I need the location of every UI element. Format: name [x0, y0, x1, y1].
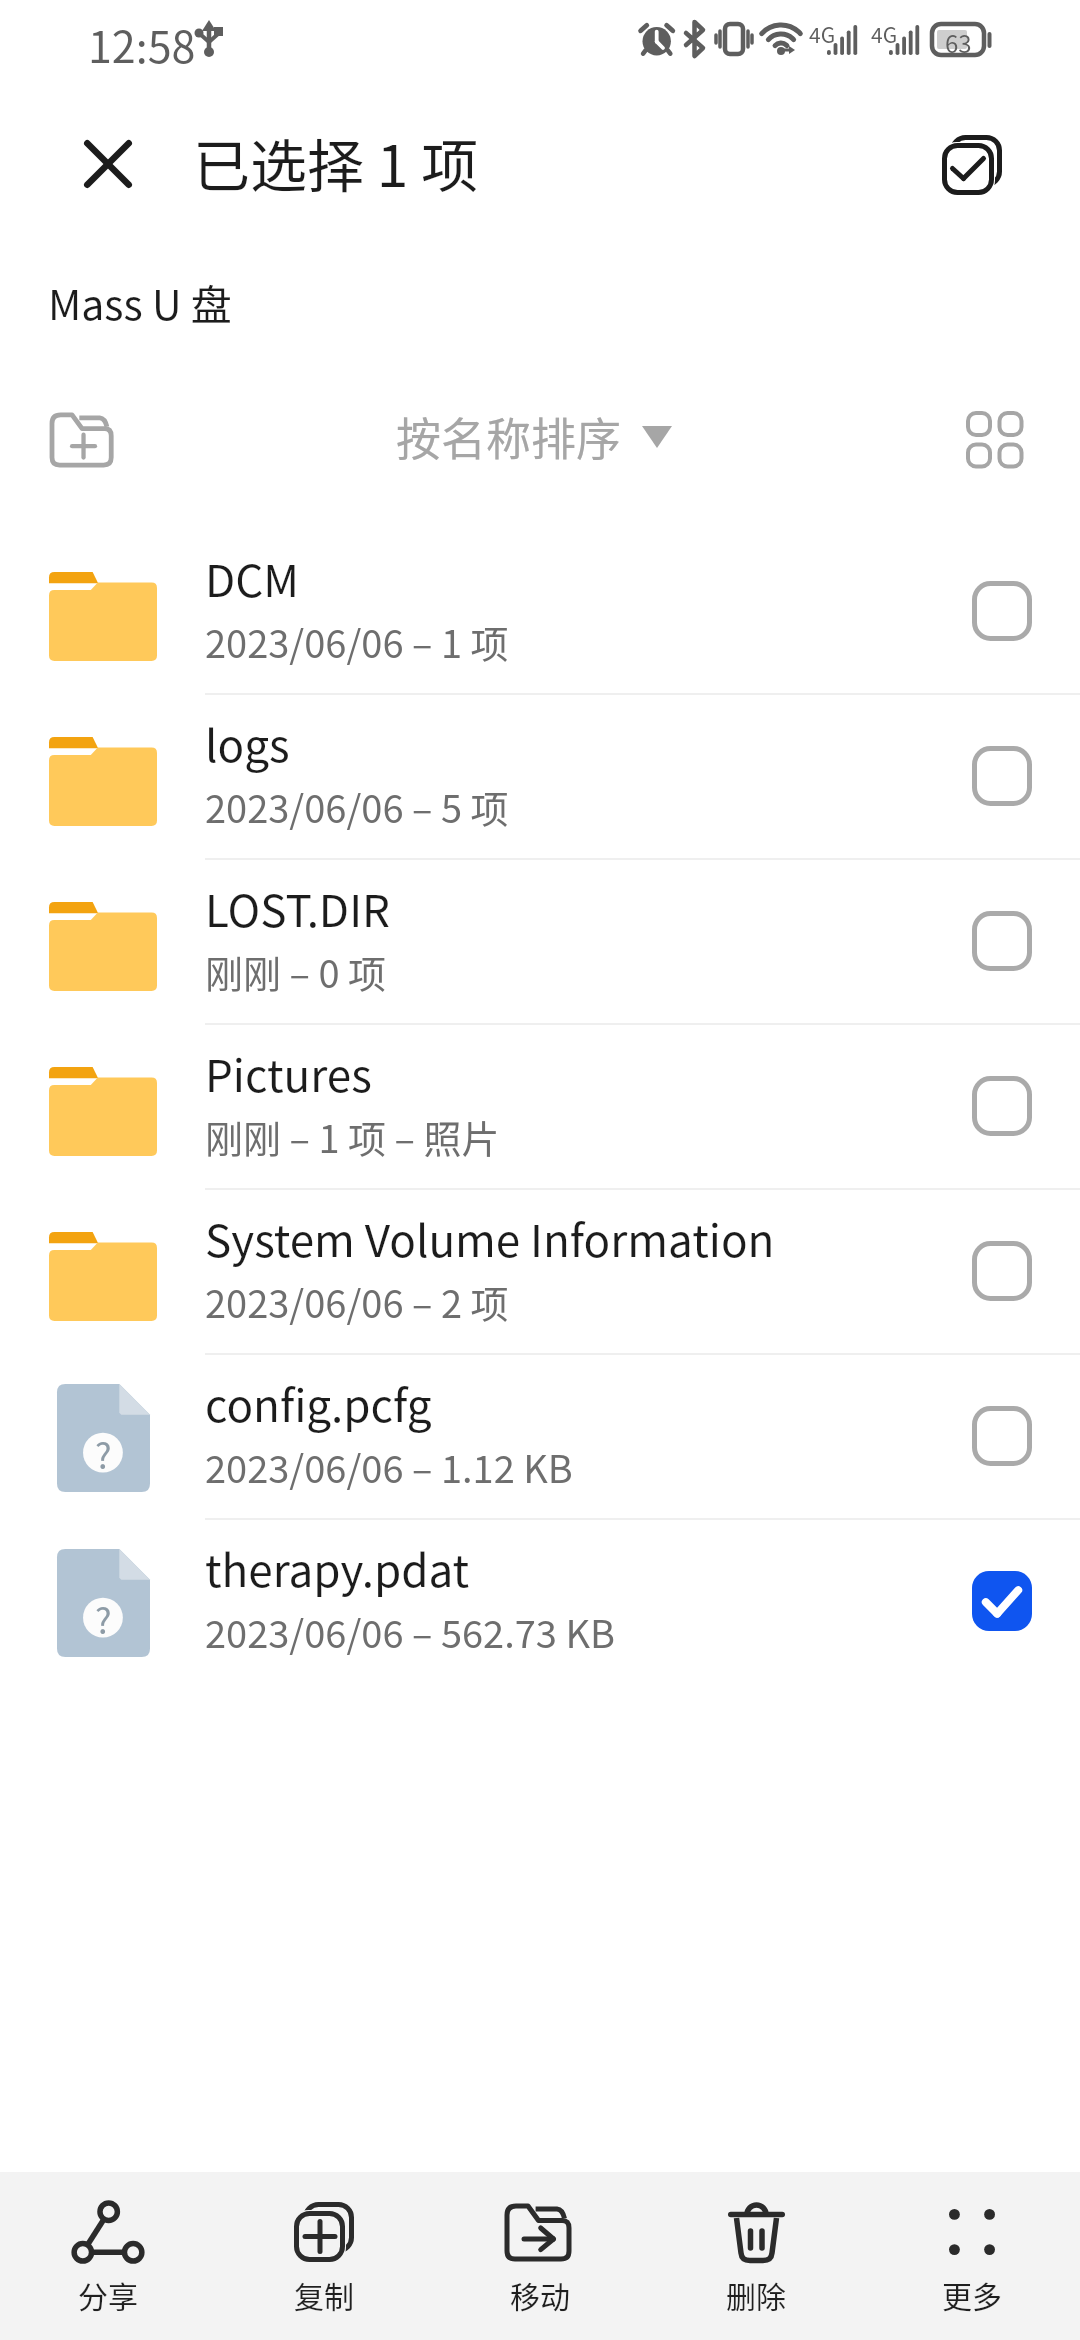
staticText: 2023/06/06 – 1.12 KB [205, 1439, 573, 1494]
staticText: 4G [809, 19, 836, 49]
button[interactable]: Selected [924, 1518, 1080, 1683]
button[interactable]: Not selected [924, 1353, 1080, 1518]
staticText: LOST.DIR [205, 876, 390, 940]
staticText: 2023/06/06 – 562.73 KB [205, 1604, 615, 1659]
staticText: Pictures [205, 1041, 372, 1105]
staticText: config.pcfg [205, 1371, 432, 1435]
button[interactable]: DCM [0, 528, 1080, 693]
button[interactable]: Not selected [924, 528, 1080, 693]
button[interactable]: logs [0, 693, 1080, 858]
staticText: 移动 [510, 2273, 570, 2316]
button[interactable]: ? [0, 1518, 1080, 1683]
button[interactable]: ? [0, 1353, 1080, 1518]
staticText: 复制 [294, 2273, 354, 2316]
staticText: 刚刚 – 1 项 – 照片 [205, 1109, 500, 1164]
button[interactable]: 按名称排序 [380, 394, 688, 479]
staticText: 分享 [78, 2273, 138, 2316]
button[interactable]: Pictures [0, 1023, 1080, 1188]
staticText: logs [205, 711, 290, 775]
button[interactable]: Select all [912, 105, 1032, 225]
button[interactable]: Not selected [924, 1188, 1080, 1353]
staticText: ? [95, 1593, 112, 1644]
button[interactable]: 移动 [432, 2172, 648, 2340]
staticText: ? [95, 1428, 112, 1479]
button[interactable]: New folder [32, 380, 136, 500]
button[interactable]: Close [62, 118, 154, 210]
staticText: 2023/06/06 – 2 项 [205, 1274, 509, 1329]
button[interactable]: 复制 [216, 2172, 432, 2340]
staticText: 删除 [726, 2273, 786, 2316]
button[interactable]: LOST.DIR [0, 858, 1080, 1023]
staticText: 2023/06/06 – 1 项 [205, 614, 509, 669]
staticText: 按名称排序 [396, 404, 622, 469]
staticText: 63 [945, 25, 972, 60]
staticText: 更多 [942, 2273, 1002, 2316]
button[interactable]: Not selected [924, 858, 1080, 1023]
button[interactable]: 更多 [864, 2172, 1080, 2340]
staticText: 2023/06/06 – 5 项 [205, 779, 509, 834]
button[interactable]: 删除 [648, 2172, 864, 2340]
button[interactable]: Grid view [935, 380, 1055, 500]
button[interactable]: System Volume Information [0, 1188, 1080, 1353]
button[interactable]: Not selected [924, 693, 1080, 858]
button[interactable]: 分享 [0, 2172, 216, 2340]
staticText: 4G [871, 19, 898, 49]
staticText: 刚刚 – 0 项 [205, 944, 386, 999]
staticText: DCM [205, 546, 300, 610]
staticText: Mass U 盘 [48, 272, 232, 331]
button[interactable]: Not selected [924, 1023, 1080, 1188]
staticText: therapy.pdat [205, 1536, 470, 1600]
staticText: 已选择 1 项 [193, 121, 479, 204]
staticText: System Volume Information [205, 1206, 775, 1270]
staticText: 12:58 [88, 13, 196, 75]
